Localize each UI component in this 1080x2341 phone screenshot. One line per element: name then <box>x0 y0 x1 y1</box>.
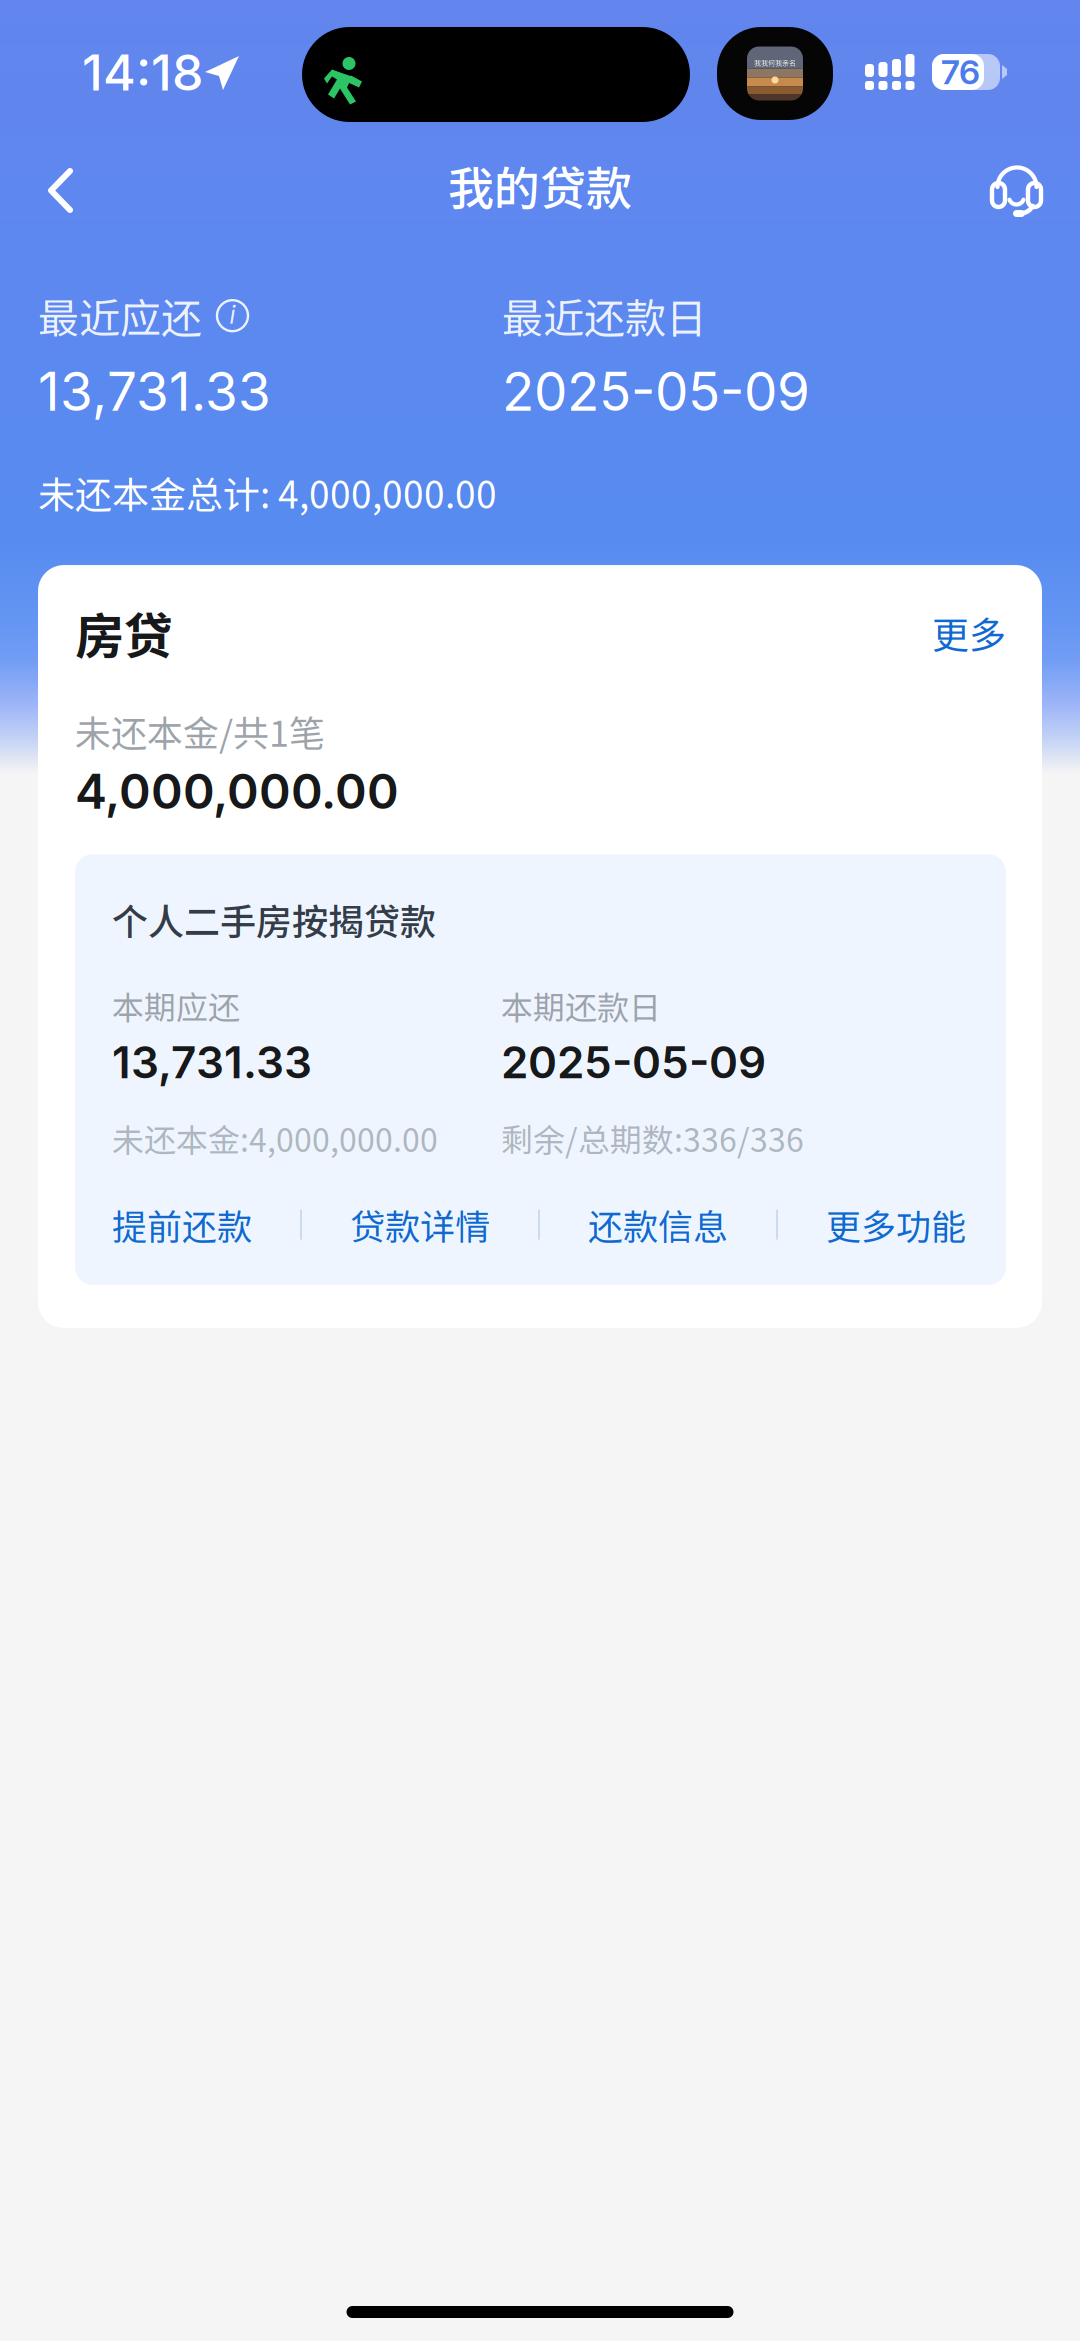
staticText: 更多 <box>932 606 1006 659</box>
staticText: 14:18 <box>82 42 203 102</box>
button[interactable]: 还款信息 <box>588 1199 728 1250</box>
button[interactable]: Customer service <box>965 146 1061 225</box>
staticText: 13,731.33 <box>112 1036 312 1089</box>
staticText: 76 <box>941 51 980 92</box>
staticText: 剩余/总期数:336/336 <box>501 1115 804 1161</box>
staticText: 我的贷款 <box>448 152 632 219</box>
button[interactable]: 提前还款 <box>112 1199 252 1250</box>
staticText: 未还本金/共1笔 <box>75 705 325 757</box>
staticText: i <box>229 300 235 330</box>
staticText: 本期应还 <box>112 982 240 1029</box>
staticText: 2025-05-09 <box>502 359 810 423</box>
staticText: 更多功能 <box>826 1199 966 1250</box>
staticText: 贷款详情 <box>350 1199 490 1250</box>
staticText: 个人二手房按揭贷款 <box>112 893 436 945</box>
button[interactable]: 贷款详情 <box>350 1199 490 1250</box>
button[interactable]: Back <box>0 146 107 218</box>
staticText: 13,731.33 <box>38 359 271 423</box>
staticText: 本期还款日 <box>501 982 661 1029</box>
staticText: 最近还款日 <box>502 286 707 345</box>
button[interactable]: 更多 <box>892 606 1006 659</box>
staticText: 我我何我亲名 <box>754 57 796 68</box>
staticText: 房贷 <box>75 597 173 668</box>
staticText: 未还本金:4,000,000.00 <box>112 1115 438 1161</box>
staticText: 未还本金总计: 4,000,000.00 <box>38 465 497 519</box>
staticText: 4,000,000.00 <box>75 762 399 820</box>
staticText: 还款信息 <box>588 1199 728 1250</box>
staticText: 提前还款 <box>112 1199 252 1250</box>
button[interactable]: 更多功能 <box>826 1199 966 1250</box>
staticText: 2025-05-09 <box>501 1036 766 1089</box>
staticText: 最近应还 <box>38 286 202 345</box>
